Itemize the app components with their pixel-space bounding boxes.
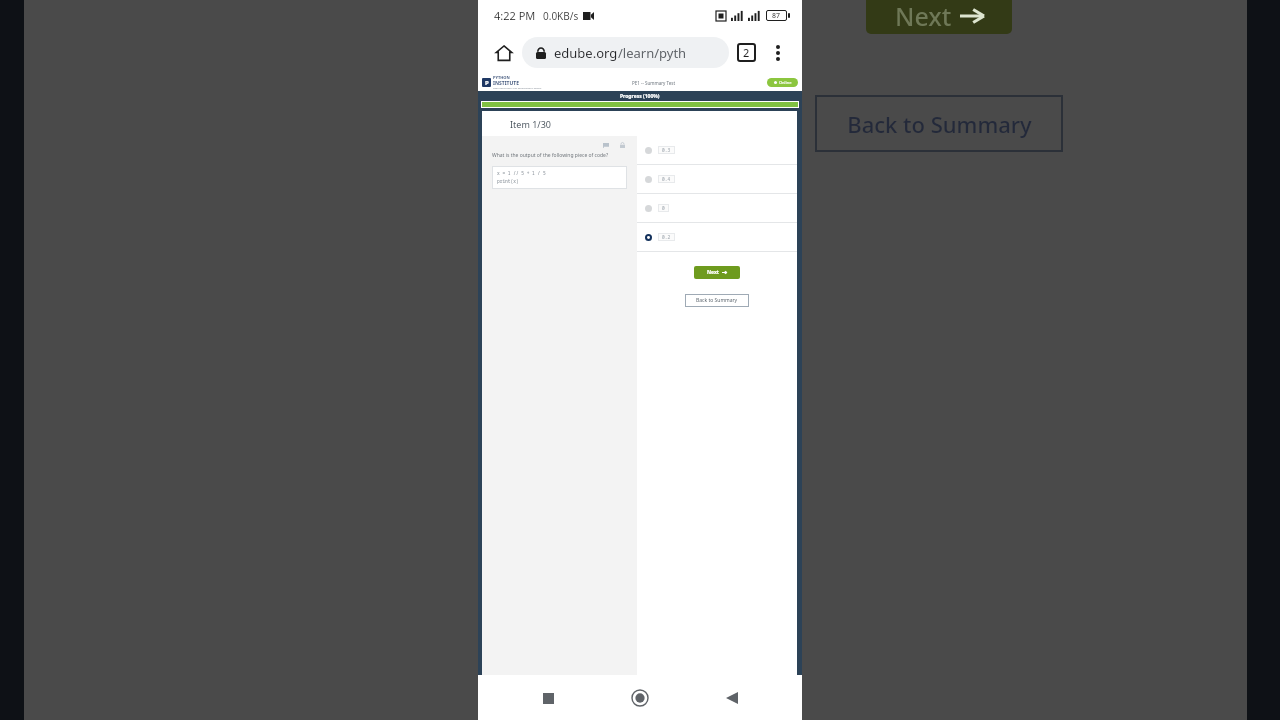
button[interactable]: Lock (617, 140, 627, 150)
staticText: OPEN EDUCATION AND DEVELOPMENT GROUP (493, 87, 542, 90)
button[interactable]: 0.4 (637, 165, 797, 193)
staticText: print(x) (497, 178, 519, 184)
staticText: 0.0KB/s (543, 9, 579, 23)
staticText: 87 (772, 11, 781, 21)
staticText: 4:22 PM (494, 8, 536, 23)
button[interactable]: Next (694, 266, 740, 279)
staticText: /learn/pyth (618, 44, 687, 62)
staticText: Back to Summary (696, 297, 738, 304)
staticText: 0.3 (662, 147, 671, 153)
staticText: 0.4 (662, 176, 671, 182)
button[interactable]: 0 (637, 194, 797, 222)
staticText: edube.org (554, 44, 618, 62)
button[interactable]: Back to Summary (815, 95, 1063, 152)
staticText: 0.2 (662, 234, 671, 240)
button[interactable]: Python Institute (482, 75, 542, 90)
button[interactable]: More options (766, 41, 790, 65)
button[interactable]: Recent apps (526, 676, 570, 720)
staticText: PYTHON (493, 75, 510, 80)
staticText: Next (707, 269, 720, 276)
button[interactable]: Next (866, 0, 1012, 34)
staticText: INSTITUTE (493, 80, 519, 87)
staticText: P (485, 79, 489, 87)
staticText: Item 1/30 (510, 118, 551, 130)
button[interactable]: Tabs (737, 43, 756, 62)
staticText: PE1 -- Summary Test (632, 80, 676, 86)
staticText: Back to Summary (847, 109, 1032, 139)
button[interactable]: Home (618, 676, 662, 720)
button[interactable]: 0.3 (637, 136, 797, 164)
button[interactable]: Flag question (601, 140, 611, 150)
staticText: 0 (662, 205, 665, 211)
button[interactable]: Home (490, 39, 518, 67)
staticText: Online (779, 80, 792, 85)
staticText: x = 1 // 5 + 1 / 5 (497, 170, 546, 176)
button[interactable]: 0.2 (637, 223, 797, 251)
staticText: Progress (100%) (620, 93, 660, 100)
button[interactable]: Back to Summary (685, 294, 749, 307)
staticText: 2 (743, 45, 750, 60)
button[interactable]: Online (767, 78, 798, 87)
staticText: What is the output of the following piec… (492, 152, 609, 159)
button[interactable]: Back (710, 676, 754, 720)
staticText: Next (895, 0, 952, 33)
button[interactable]: edube.org (522, 37, 729, 68)
